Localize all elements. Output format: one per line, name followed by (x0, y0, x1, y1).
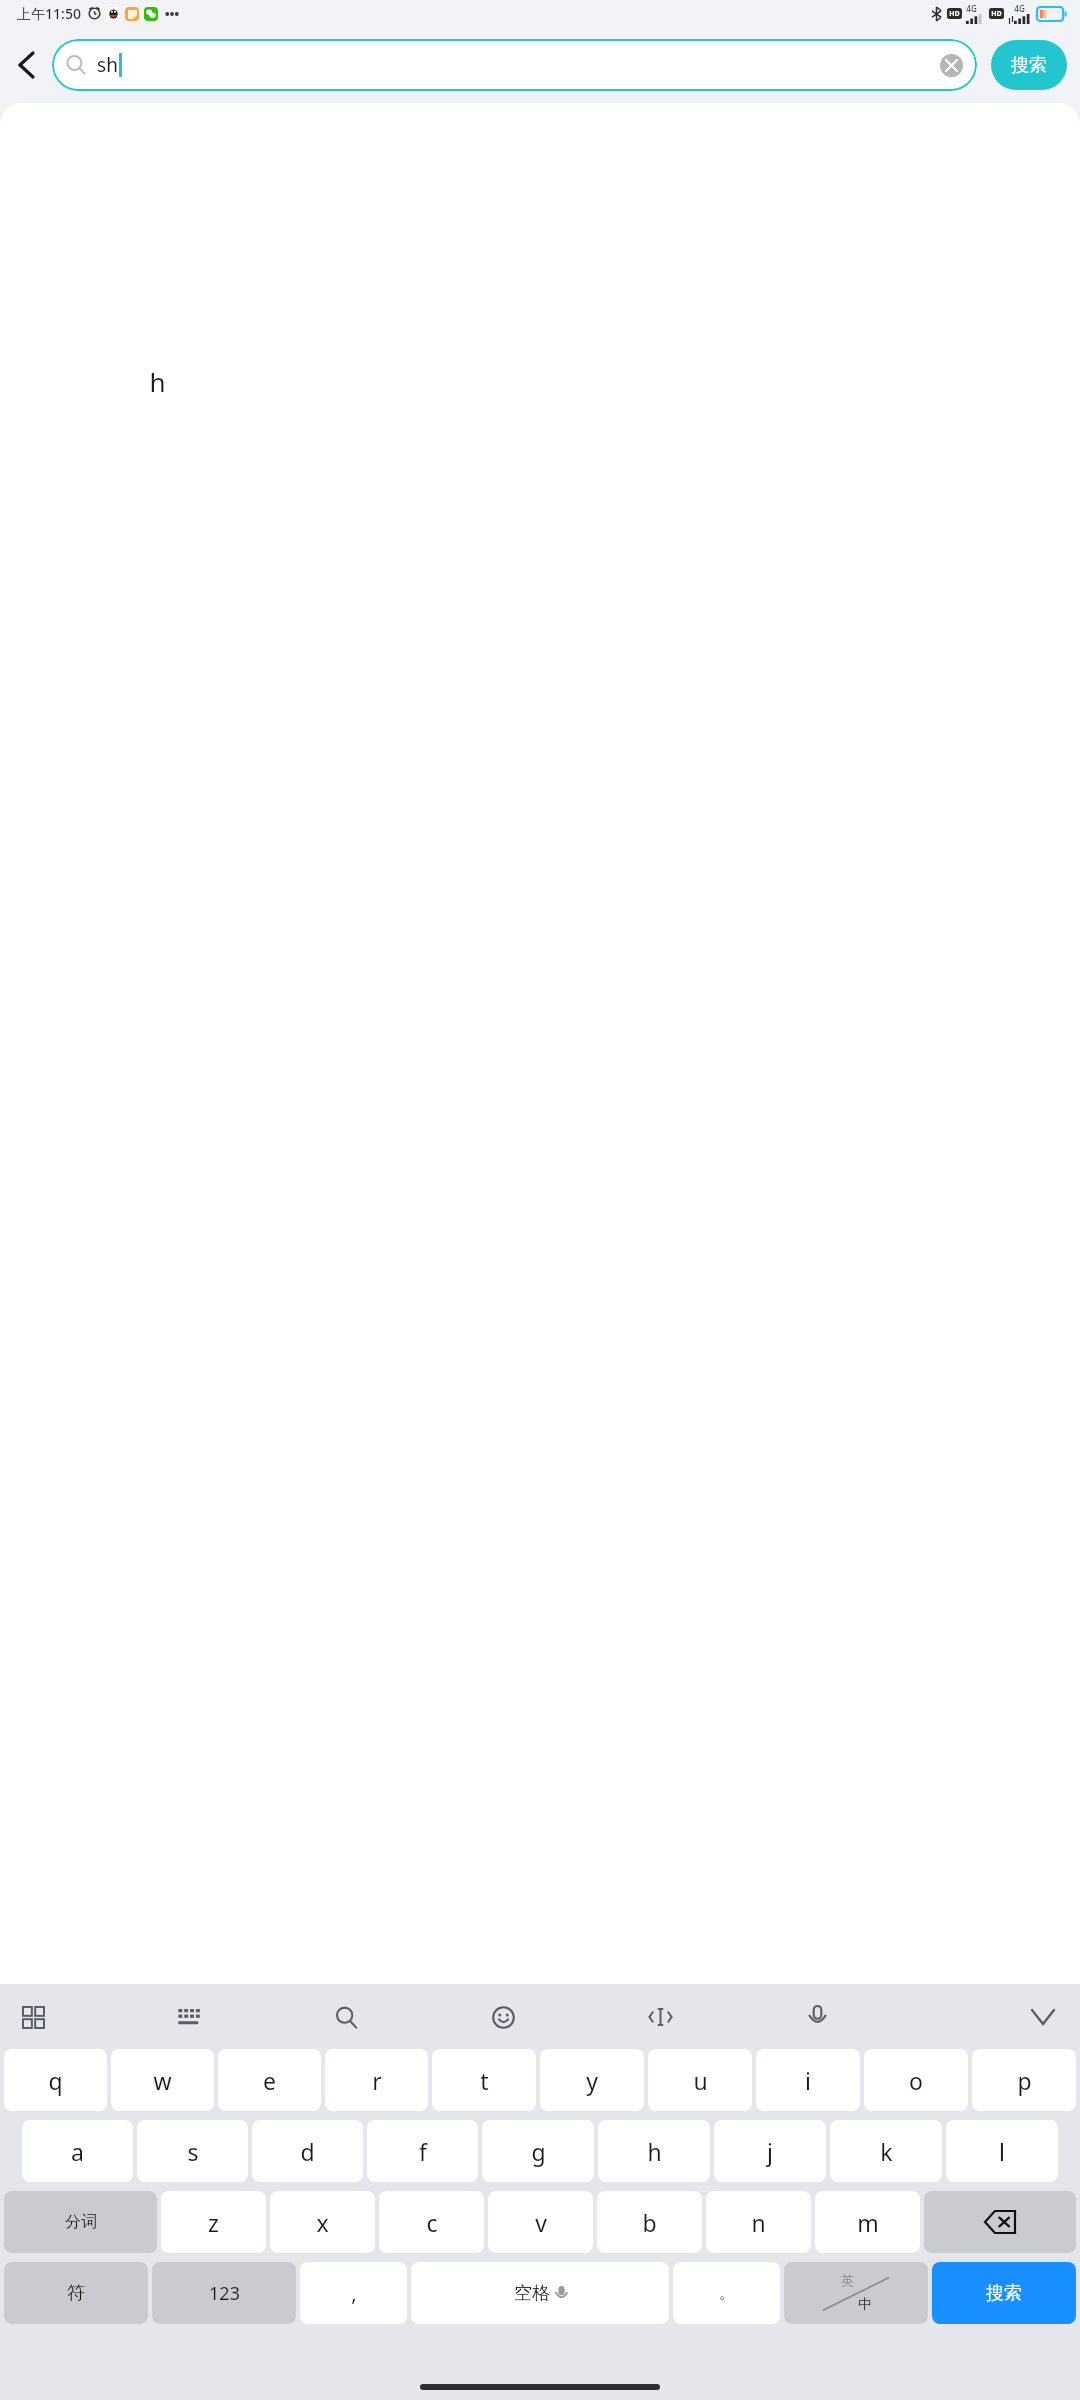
staticText: l (999, 2136, 1005, 2167)
button[interactable]: g (482, 2120, 594, 2182)
staticText: 搜索 (986, 2282, 1022, 2305)
staticText: e (263, 2065, 276, 2096)
staticText: r (372, 2065, 382, 2096)
staticText: 上午11:50 (17, 4, 81, 23)
staticText: i (805, 2065, 811, 2096)
button[interactable]: a (22, 2120, 133, 2182)
button[interactable]: u (648, 2049, 752, 2111)
staticText: p (1017, 2065, 1032, 2096)
staticText: b (642, 2207, 657, 2238)
button[interactable]: Backspace (924, 2191, 1076, 2253)
button[interactable]: Hide keyboard (1022, 1996, 1064, 2038)
staticText: z (208, 2207, 219, 2238)
staticText: s (187, 2136, 199, 2167)
staticText: a (71, 2136, 84, 2167)
button[interactable]: j (714, 2120, 826, 2182)
button[interactable]: v (488, 2191, 593, 2253)
button[interactable]: w (111, 2049, 214, 2111)
button[interactable]: i (756, 2049, 860, 2111)
button[interactable]: Clear (940, 54, 963, 77)
button[interactable]: m (815, 2191, 920, 2253)
button[interactable]: 搜索 (991, 40, 1067, 90)
staticText: f (419, 2136, 427, 2167)
staticText: h (647, 2136, 662, 2167)
staticText: u (693, 2065, 708, 2096)
button[interactable]: 搜索 (932, 2262, 1076, 2324)
staticText: o (909, 2065, 923, 2096)
button[interactable]: r (325, 2049, 428, 2111)
staticText: t (480, 2065, 489, 2096)
button[interactable]: e (218, 2049, 321, 2111)
button[interactable]: Switch English Chinese (784, 2262, 928, 2324)
button[interactable]: c (379, 2191, 484, 2253)
button[interactable]: q (4, 2049, 107, 2111)
staticText: 中 (858, 2296, 872, 2314)
staticText: g (531, 2136, 546, 2167)
staticText: 搜索 (1011, 54, 1047, 77)
staticText: v (535, 2207, 547, 2238)
button[interactable]: h (598, 2120, 710, 2182)
staticText: d (300, 2136, 315, 2167)
staticText: w (153, 2065, 172, 2096)
button[interactable]: l (946, 2120, 1058, 2182)
button[interactable]: x (270, 2191, 375, 2253)
button[interactable]: p (972, 2049, 1076, 2111)
button[interactable]: 符 (4, 2262, 148, 2324)
staticText: 英 (841, 2272, 854, 2288)
staticText: h (149, 364, 166, 399)
staticText: 符 (67, 2282, 85, 2305)
button[interactable]: Keyboard layout (168, 1996, 210, 2038)
button[interactable]: t (432, 2049, 536, 2111)
button[interactable]: 。 (673, 2262, 780, 2324)
staticText: y (586, 2065, 598, 2096)
staticText: 123 (209, 2281, 240, 2306)
staticText: HD (991, 9, 1002, 19)
button[interactable]: , (300, 2262, 407, 2324)
button[interactable]: sh (52, 39, 977, 91)
button[interactable]: k (830, 2120, 942, 2182)
button[interactable]: Back (0, 39, 52, 91)
staticText: HD (949, 9, 960, 19)
button[interactable]: Voice input (796, 1996, 838, 2038)
staticText: 。 (719, 2283, 735, 2303)
button[interactable]: o (864, 2049, 968, 2111)
staticText: c (426, 2207, 438, 2238)
staticText: k (880, 2136, 893, 2167)
staticText: 空格 (514, 2282, 550, 2305)
staticText: j (767, 2136, 773, 2167)
staticText: 分词 (65, 2212, 97, 2232)
button[interactable]: z (161, 2191, 266, 2253)
staticText: 4G (966, 3, 977, 14)
button[interactable]: Emoji (482, 1996, 524, 2038)
staticText: x (316, 2207, 329, 2238)
button[interactable]: s (137, 2120, 248, 2182)
button[interactable]: n (706, 2191, 811, 2253)
staticText: n (751, 2207, 766, 2238)
button[interactable]: Cursor (639, 1996, 681, 2038)
button[interactable]: y (540, 2049, 644, 2111)
button[interactable]: 分词 (4, 2191, 157, 2253)
staticText: sh (97, 52, 118, 78)
button[interactable]: d (252, 2120, 363, 2182)
staticText: q (48, 2065, 63, 2096)
button[interactable]: 空格 (411, 2262, 669, 2324)
button[interactable]: f (367, 2120, 478, 2182)
staticText: , (351, 2280, 357, 2307)
button[interactable]: 123 (152, 2262, 296, 2324)
staticText: 4G (1014, 3, 1025, 14)
button[interactable]: b (597, 2191, 702, 2253)
staticText: m (857, 2207, 879, 2238)
button[interactable]: Search (325, 1996, 367, 2038)
button[interactable]: Panels (12, 1996, 54, 2038)
